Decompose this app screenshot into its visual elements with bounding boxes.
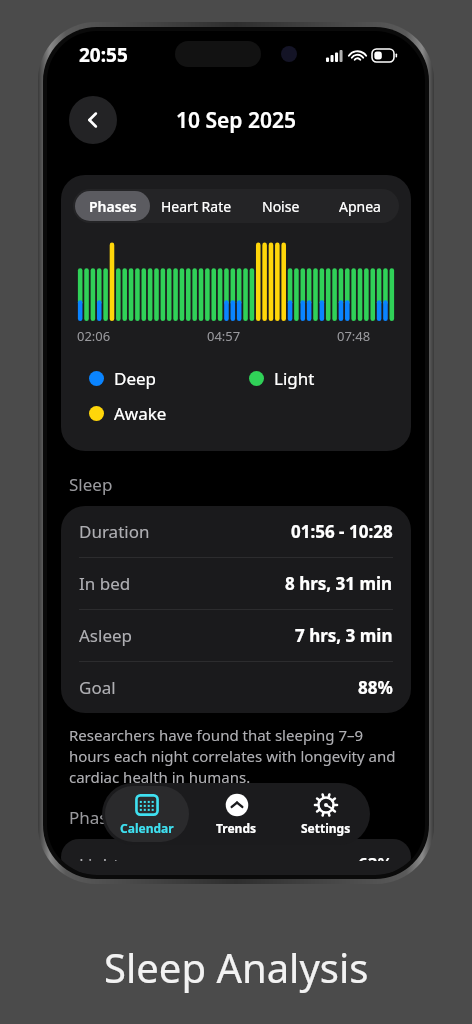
staticText: Heart Rate bbox=[161, 197, 232, 216]
button[interactable]: Phases bbox=[75, 191, 150, 221]
staticText: 04:57 bbox=[207, 327, 241, 345]
staticText: Awake bbox=[114, 402, 167, 425]
staticText: Researchers have found that sleeping 7–9… bbox=[69, 725, 403, 788]
staticText: 63% bbox=[358, 853, 393, 861]
staticText: 8 hrs, 31 min bbox=[285, 572, 393, 595]
button[interactable]: In bed bbox=[79, 558, 393, 610]
staticText: 7 hrs, 3 min bbox=[295, 624, 393, 647]
button[interactable]: Noise bbox=[243, 191, 318, 221]
button[interactable]: Asleep bbox=[79, 610, 393, 662]
staticText: In bed bbox=[79, 572, 131, 595]
staticText: Light bbox=[274, 367, 315, 390]
staticText: Duration bbox=[79, 520, 150, 543]
staticText: 01:56 - 10:28 bbox=[291, 520, 393, 543]
staticText: 02:06 bbox=[77, 327, 111, 345]
staticText: Light bbox=[79, 853, 120, 861]
staticText: 07:48 bbox=[337, 327, 371, 345]
staticText: 88% bbox=[358, 676, 393, 699]
button[interactable]: Heart Rate bbox=[154, 191, 239, 221]
staticText: Apnea bbox=[339, 197, 381, 216]
staticText: Asleep bbox=[79, 624, 133, 647]
button[interactable]: Settings bbox=[281, 783, 370, 845]
staticText: Sleep bbox=[69, 473, 113, 496]
staticText: Trends bbox=[216, 820, 257, 836]
staticText: Phases bbox=[69, 806, 126, 829]
staticText: Phases bbox=[89, 197, 137, 216]
button[interactable]: Duration bbox=[79, 506, 393, 558]
staticText: Settings bbox=[301, 820, 351, 836]
staticText: Sleep Analysis bbox=[104, 940, 369, 994]
staticText: Goal bbox=[79, 676, 116, 699]
button[interactable]: Goal bbox=[79, 662, 393, 713]
staticText: Calendar bbox=[120, 820, 174, 836]
staticText: 20:55 bbox=[79, 42, 128, 68]
button[interactable]: Back bbox=[69, 96, 117, 144]
button[interactable]: Calendar bbox=[105, 786, 189, 842]
button[interactable]: Trends bbox=[192, 783, 281, 845]
staticText: Noise bbox=[262, 197, 300, 216]
staticText: 10 Sep 2025 bbox=[176, 106, 296, 135]
button[interactable]: Apnea bbox=[322, 191, 397, 221]
staticText: Deep bbox=[114, 367, 157, 390]
